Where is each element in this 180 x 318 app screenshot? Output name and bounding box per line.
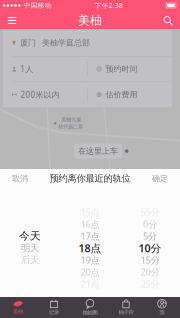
- button[interactable]: 柚子街: [108, 297, 144, 318]
- button[interactable]: 记录: [36, 297, 72, 318]
- staticText: 20分: [140, 266, 159, 278]
- staticText: 下午2:38: [95, 1, 123, 10]
- button[interactable]: 美柚: [0, 297, 36, 318]
- staticText: 200米以内: [21, 89, 60, 100]
- button[interactable]: 确定: [144, 170, 176, 187]
- staticText: 在这里上车: [78, 146, 118, 156]
- staticText: 明天: [21, 242, 39, 254]
- staticText: 16点: [80, 218, 99, 230]
- staticText: 55分: [140, 206, 159, 218]
- button[interactable]: 预约时间: [88, 56, 172, 81]
- staticText: 17点: [80, 230, 99, 242]
- staticText: 21点: [80, 278, 99, 290]
- button[interactable]: 1人: [3, 56, 87, 81]
- staticText: 1人: [20, 64, 33, 74]
- button[interactable]: Search: [158, 12, 178, 29]
- staticText: 记录: [49, 309, 59, 316]
- staticText: 厦门 美柚学庭总部: [20, 38, 90, 48]
- button[interactable]: 估价费用: [88, 82, 172, 107]
- staticText: 18点: [78, 241, 101, 255]
- staticText: 她她圈: [82, 309, 97, 316]
- staticText: 10分: [138, 241, 161, 255]
- staticText: 15点: [80, 206, 99, 218]
- staticText: 美柚: [13, 308, 23, 315]
- button[interactable]: 200米以内: [3, 82, 87, 107]
- button[interactable]: 她她圈: [72, 297, 108, 318]
- staticText: 美柚大厦: [61, 116, 81, 123]
- staticText: 取消: [12, 174, 28, 183]
- staticText: 5分: [143, 230, 157, 242]
- staticText: 美柚: [78, 13, 102, 28]
- staticText: 估价费用: [105, 90, 137, 99]
- staticText: 后天: [21, 254, 39, 266]
- staticText: 20点: [80, 266, 99, 278]
- staticText: 25分: [140, 278, 159, 290]
- staticText: 预约时间: [105, 64, 137, 74]
- staticText: 预约离你最近的轨位: [49, 173, 130, 184]
- button[interactable]: 我: [144, 297, 180, 318]
- button[interactable]: 厦门 美柚学庭总部: [3, 30, 172, 56]
- staticText: 19点: [80, 254, 99, 266]
- button[interactable]: Menu: [2, 12, 22, 29]
- staticText: 软件园二期: [58, 124, 83, 130]
- staticText: 0分: [143, 218, 157, 230]
- staticText: 我: [159, 309, 164, 316]
- staticText: 确定: [152, 174, 168, 183]
- staticText: 今天: [19, 229, 41, 242]
- staticText: 中国移动: [24, 1, 52, 10]
- button[interactable]: 取消: [4, 170, 36, 187]
- staticText: 15分: [140, 254, 159, 266]
- staticText: 柚子街: [118, 309, 133, 316]
